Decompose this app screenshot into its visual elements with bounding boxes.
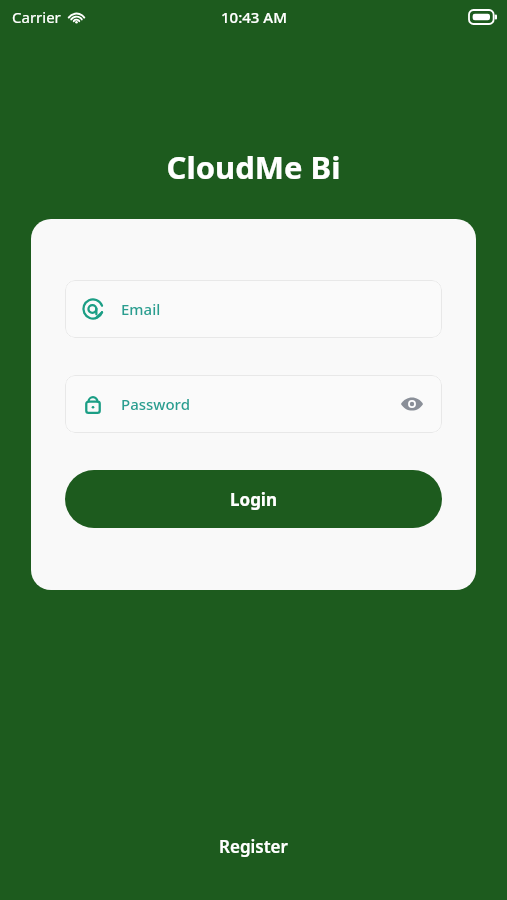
staticText: Carrier bbox=[12, 7, 61, 27]
button[interactable]: Login bbox=[65, 470, 442, 528]
button[interactable]: Email bbox=[65, 280, 442, 338]
button[interactable]: Password bbox=[65, 375, 442, 433]
button[interactable]: Register bbox=[201, 827, 306, 866]
staticText: 10:43 AM bbox=[221, 7, 287, 27]
staticText: CloudMe Bi bbox=[0, 146, 507, 188]
staticText: Password bbox=[121, 394, 398, 414]
staticText: Login bbox=[230, 488, 278, 511]
staticText: Register bbox=[219, 835, 288, 858]
staticText: Email bbox=[121, 299, 161, 319]
button[interactable]: Show password bbox=[398, 390, 426, 418]
